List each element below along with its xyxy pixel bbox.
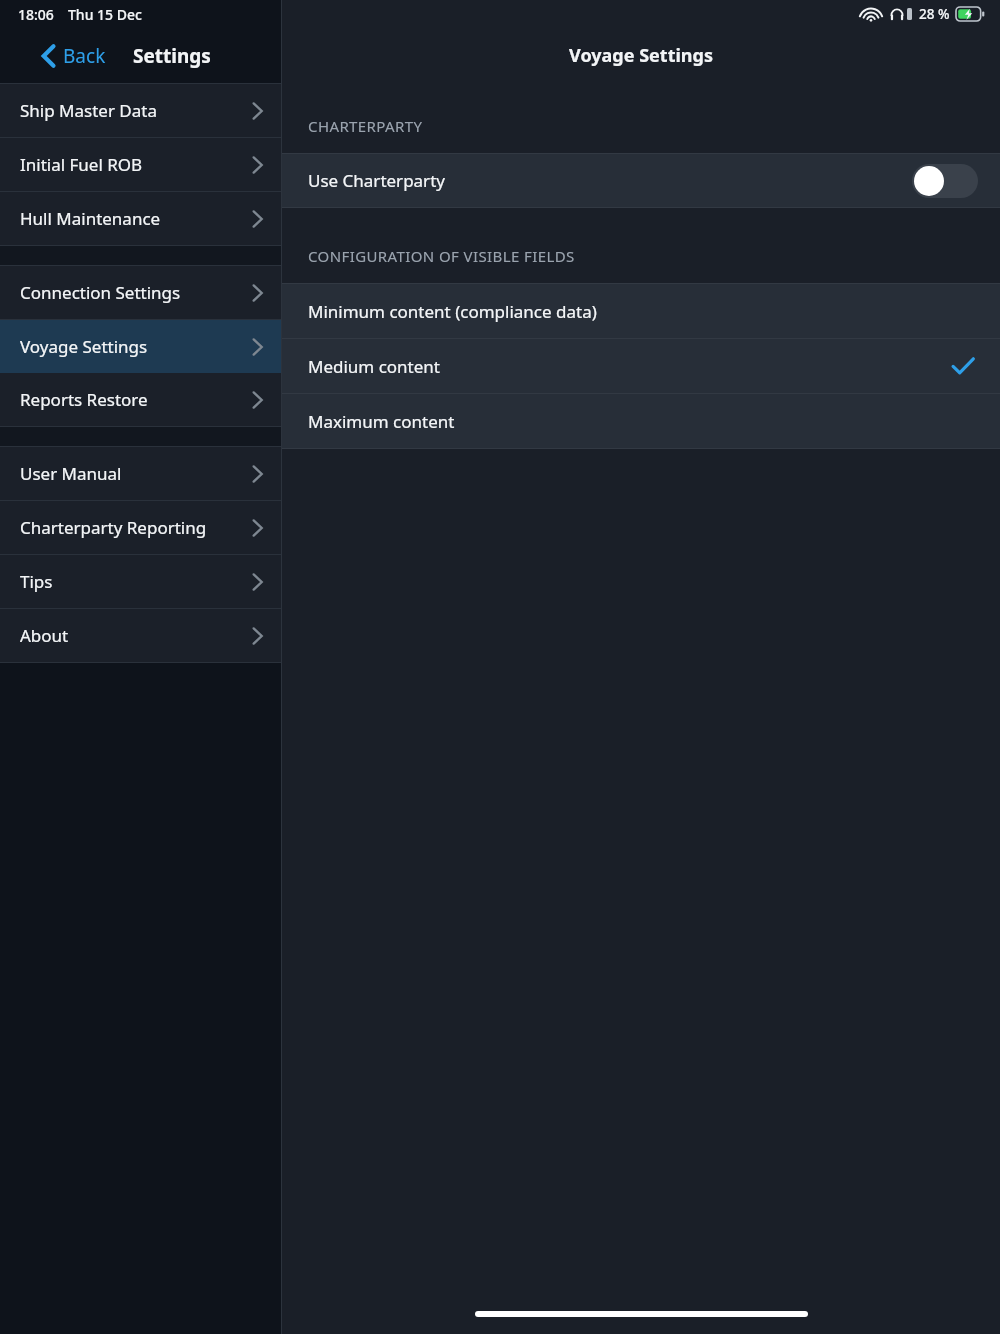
staticText: Tips	[20, 570, 53, 593]
staticText: CHARTERPARTY	[308, 116, 423, 136]
button[interactable]: Reports Restore	[0, 373, 281, 426]
staticText: Thu 15 Dec	[68, 5, 142, 24]
button[interactable]: Tips	[0, 555, 281, 608]
staticText: Connection Settings	[20, 281, 181, 304]
button[interactable]: Connection Settings	[0, 266, 281, 319]
button[interactable]: Medium content	[282, 339, 1000, 393]
staticText: User Manual	[20, 462, 122, 485]
button[interactable]: Back	[36, 37, 112, 75]
button[interactable]: Voyage Settings	[0, 320, 281, 373]
staticText: About	[20, 624, 69, 647]
button[interactable]: Use Charterparty	[282, 154, 1000, 207]
staticText: Back	[63, 43, 106, 69]
staticText: 28 %	[919, 5, 950, 23]
button[interactable]: Initial Fuel ROB	[0, 138, 281, 191]
button[interactable]: About	[0, 609, 281, 662]
staticText: Hull Maintenance	[20, 207, 161, 230]
staticText: CONFIGURATION OF VISIBLE FIELDS	[308, 246, 575, 266]
staticText: Voyage Settings	[569, 43, 713, 68]
button[interactable]: Ship Master Data	[0, 84, 281, 137]
button[interactable]: Maximum content	[282, 394, 1000, 448]
button[interactable]: Charterparty Reporting	[0, 501, 281, 554]
other: Use Charterparty toggle	[912, 164, 978, 198]
button[interactable]: Hull Maintenance	[0, 192, 281, 245]
staticText: Medium content	[308, 355, 440, 378]
staticText: Voyage Settings	[20, 335, 148, 358]
staticText: Reports Restore	[20, 388, 148, 411]
staticText: Maximum content	[308, 410, 455, 433]
staticText: Ship Master Data	[20, 99, 157, 122]
staticText: Charterparty Reporting	[20, 516, 207, 539]
staticText: Settings	[133, 43, 211, 69]
staticText: Minimum content (compliance data)	[308, 300, 597, 323]
staticText: Initial Fuel ROB	[20, 153, 143, 176]
button[interactable]: Minimum content (compliance data)	[282, 284, 1000, 338]
staticText: 18:06	[18, 5, 54, 24]
button[interactable]: User Manual	[0, 447, 281, 500]
staticText: Use Charterparty	[308, 169, 445, 192]
